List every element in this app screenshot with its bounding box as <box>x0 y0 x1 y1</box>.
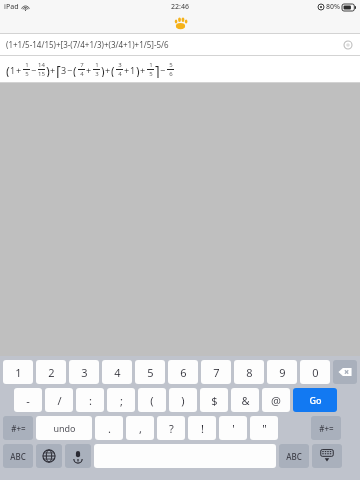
staticText: [ <box>56 61 61 78</box>
staticText: & <box>241 393 250 408</box>
staticText: 1 <box>95 61 99 69</box>
button[interactable]: 4 <box>102 360 132 384</box>
button[interactable]: $ <box>200 388 228 412</box>
staticText: ABC <box>286 451 302 462</box>
staticText: 3 <box>61 64 67 76</box>
staticText: iPad <box>4 2 19 12</box>
staticText: ] <box>155 61 160 78</box>
staticText: 7 <box>80 61 84 69</box>
staticText: 9 <box>279 365 286 380</box>
staticText: 22:46 <box>171 2 189 12</box>
staticText: − <box>31 64 37 76</box>
button[interactable]: ! <box>188 416 216 440</box>
staticText: ! <box>201 421 204 436</box>
button[interactable]: App logo <box>172 15 189 32</box>
staticText: 2 <box>48 365 55 380</box>
button[interactable]: Clear <box>341 38 354 51</box>
button[interactable]: 3 <box>69 360 99 384</box>
staticText: 3 <box>81 365 88 380</box>
staticText: 6 <box>180 365 187 380</box>
button[interactable]: 0 <box>300 360 330 384</box>
staticText: 4 <box>114 365 121 380</box>
button[interactable]: Next keyboard <box>36 444 62 468</box>
staticText: #+= <box>11 423 26 434</box>
button[interactable]: undo <box>36 416 92 440</box>
staticText: @ <box>271 393 281 408</box>
staticText: + <box>86 64 92 76</box>
button[interactable]: Dictation <box>65 444 91 468</box>
button[interactable]: " <box>250 416 278 440</box>
button[interactable]: ( <box>138 388 166 412</box>
staticText: 14 <box>38 61 45 69</box>
staticText: ' <box>232 421 235 436</box>
button[interactable]: (1+1/5-14/15)+[3-(7/4+1/3)+(3/4+1)+1/5]-… <box>0 34 360 55</box>
staticText: (1+1/5-14/15)+[3-(7/4+1/3)+(3/4+1)+1/5]-… <box>6 39 341 50</box>
button[interactable]: 2 <box>36 360 66 384</box>
staticText: 15 <box>38 70 45 78</box>
staticText: + <box>16 64 22 76</box>
staticText: ? <box>169 421 174 436</box>
button[interactable]: #+= <box>3 416 33 440</box>
staticText: ( <box>111 63 115 77</box>
staticText: − <box>67 64 73 76</box>
button[interactable]: , <box>126 416 154 440</box>
button[interactable]: #+= <box>311 416 341 440</box>
staticText: 3 <box>95 70 99 78</box>
staticText: , <box>139 421 142 436</box>
staticText: 4 <box>80 70 84 78</box>
button[interactable]: 1 <box>3 360 33 384</box>
staticText: 5 <box>169 61 173 69</box>
staticText: + <box>124 64 130 76</box>
button[interactable]: 6 <box>168 360 198 384</box>
button[interactable]: . <box>95 416 123 440</box>
button[interactable]: ) <box>169 388 197 412</box>
staticText: #+= <box>319 423 334 434</box>
button[interactable]: ? <box>157 416 185 440</box>
button[interactable]: 5 <box>135 360 165 384</box>
staticText: ) <box>46 62 50 77</box>
button[interactable]: - <box>14 388 42 412</box>
staticText: ( <box>73 63 77 77</box>
staticText: 80% <box>326 2 340 12</box>
staticText: 5 <box>149 70 153 78</box>
button[interactable]: : <box>76 388 104 412</box>
staticText: ( <box>150 393 154 408</box>
button[interactable]: ( <box>0 56 360 82</box>
staticText: + <box>140 64 146 76</box>
button[interactable]: Hide keyboard <box>312 444 342 468</box>
staticText: 1 <box>15 365 22 380</box>
staticText: ; <box>120 393 123 408</box>
staticText: 1 <box>25 61 29 69</box>
staticText: ) <box>181 393 185 408</box>
staticText: + <box>50 64 56 76</box>
staticText: 5 <box>25 70 29 78</box>
staticText: 4 <box>118 70 122 78</box>
staticText: 8 <box>246 365 253 380</box>
staticText: $ <box>211 393 218 408</box>
button[interactable]: Backspace <box>333 360 357 384</box>
staticText: 0 <box>312 365 319 380</box>
staticText: 1 <box>149 61 153 69</box>
staticText: ) <box>136 63 140 77</box>
staticText: . <box>108 421 111 436</box>
button[interactable]: / <box>45 388 73 412</box>
button[interactable]: ABC <box>3 444 33 468</box>
button[interactable]: & <box>231 388 259 412</box>
staticText: 1 <box>130 64 136 76</box>
button[interactable]: 7 <box>201 360 231 384</box>
button[interactable]: 8 <box>234 360 264 384</box>
staticText: ABC <box>10 451 26 462</box>
staticText: / <box>57 393 62 408</box>
button[interactable]: ' <box>219 416 247 440</box>
button[interactable]: ABC <box>279 444 309 468</box>
button[interactable]: 9 <box>267 360 297 384</box>
button[interactable]: @ <box>262 388 290 412</box>
staticText: 1 <box>10 64 16 76</box>
staticText: Go <box>309 394 322 406</box>
button[interactable]: ; <box>107 388 135 412</box>
staticText: − <box>160 64 166 76</box>
button[interactable]: Go <box>293 388 337 412</box>
staticText: 7 <box>213 365 220 380</box>
staticText: + <box>105 64 111 76</box>
